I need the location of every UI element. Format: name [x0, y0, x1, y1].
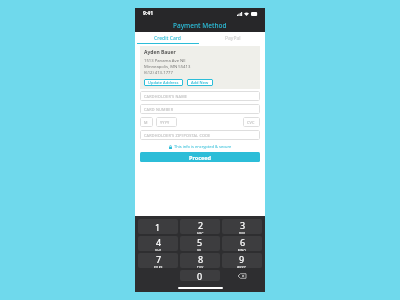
staticText: 5 — [197, 236, 203, 248]
button[interactable]: CARDHOLDER'S ZIP/POSTAL CODE — [140, 130, 260, 140]
staticText: 9:41 — [143, 10, 153, 17]
button[interactable]: Delete — [222, 270, 262, 281]
staticText: Minneapolis, MN 55413 — [144, 64, 191, 70]
button[interactable]: YYYY — [156, 117, 177, 127]
staticText: PQRS — [154, 266, 163, 268]
staticText: 2 — [198, 219, 204, 231]
staticText: 0 — [197, 270, 203, 281]
button[interactable]: Credit Card — [135, 32, 200, 44]
staticText: 7 — [156, 253, 162, 265]
staticText: Credit Card — [154, 35, 181, 42]
button[interactable]: 8 — [180, 253, 220, 268]
button[interactable]: CVC — [243, 117, 260, 127]
button[interactable]: CARDHOLDER'S NAME — [140, 91, 260, 101]
staticText: TUV — [197, 266, 204, 268]
staticText: 4 — [156, 236, 162, 248]
staticText: Ayden Bauer — [144, 49, 176, 56]
staticText: 9 — [239, 253, 245, 265]
staticText: 1513 Panama Ave NE — [144, 58, 186, 64]
staticText: CARD NUMBER — [144, 107, 174, 112]
staticText: WXYZ — [237, 266, 247, 268]
staticText: JKL — [197, 249, 203, 251]
button[interactable]: MM — [140, 117, 153, 127]
staticText: DEF — [239, 232, 246, 234]
button[interactable]: PayPal — [200, 32, 265, 44]
button[interactable]: CARD NUMBER — [140, 104, 260, 114]
button[interactable]: Update Address — [144, 79, 183, 86]
button[interactable]: 2 — [180, 219, 220, 234]
staticText: This info is encrypted & secure — [174, 144, 232, 149]
staticText: Payment Method — [173, 21, 227, 30]
staticText: Add New — [191, 80, 209, 85]
staticText: CVC — [247, 120, 255, 125]
staticText: (612) 413-1777 — [144, 70, 173, 76]
staticText: MM — [144, 120, 149, 125]
button[interactable]: Proceed — [140, 152, 260, 162]
staticText: YYYY — [160, 120, 170, 125]
button[interactable]: Add New — [187, 79, 213, 86]
button[interactable]: 1 — [138, 219, 178, 234]
staticText: CARDHOLDER'S ZIP/POSTAL CODE — [144, 133, 211, 138]
staticText: MNO — [238, 249, 247, 251]
staticText: 1 — [155, 221, 161, 233]
staticText: GHI — [155, 249, 162, 251]
button[interactable]: 7 — [138, 253, 178, 268]
staticText: 3 — [240, 219, 246, 231]
staticText: 8 — [198, 253, 204, 265]
button[interactable]: 4 — [138, 236, 178, 251]
button[interactable]: 9 — [222, 253, 262, 268]
button[interactable]: 3 — [222, 219, 262, 234]
staticText: 6 — [240, 236, 246, 248]
staticText: Update Address — [148, 80, 179, 85]
button[interactable]: 5 — [180, 236, 220, 251]
staticText: PayPal — [225, 35, 241, 42]
staticText: ABC — [197, 232, 204, 234]
staticText: Proceed — [189, 154, 212, 161]
button[interactable]: 0 — [180, 270, 220, 281]
button[interactable]: 6 — [222, 236, 262, 251]
staticText: CARDHOLDER'S NAME — [144, 94, 188, 99]
